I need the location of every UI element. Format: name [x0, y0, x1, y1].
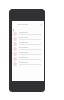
button[interactable] — [12, 51, 44, 56]
button[interactable] — [12, 46, 44, 51]
button[interactable] — [12, 56, 44, 61]
button[interactable] — [12, 61, 44, 66]
button[interactable] — [12, 31, 44, 36]
button[interactable]: Menu — [12, 22, 44, 27]
button[interactable] — [12, 41, 44, 46]
button[interactable] — [12, 36, 44, 41]
